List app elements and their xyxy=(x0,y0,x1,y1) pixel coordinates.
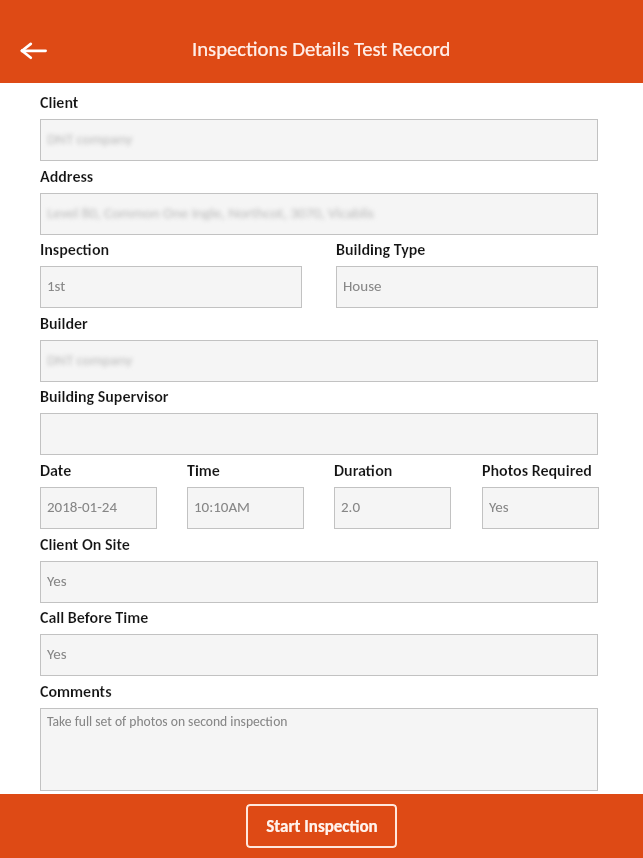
staticText: Inspections Details Test Record xyxy=(192,36,451,61)
staticText: Client On Site xyxy=(40,535,130,555)
staticText: Date xyxy=(40,461,72,481)
button[interactable]: 10:10AM xyxy=(187,487,304,529)
staticText: DNT company xyxy=(47,351,133,369)
staticText: Building Type xyxy=(336,240,426,260)
staticText: Builder xyxy=(40,314,88,334)
button[interactable]: Yes xyxy=(40,561,598,603)
staticText: Building Supervisor xyxy=(40,387,169,407)
staticText: Inspection xyxy=(40,240,110,260)
staticText: Yes xyxy=(47,572,67,590)
button[interactable]: 2.0 xyxy=(334,487,451,529)
button[interactable] xyxy=(40,413,598,455)
staticText: House xyxy=(343,277,382,295)
button[interactable]: Level 80, Common One Ingle, Northcot, 30… xyxy=(40,193,598,235)
staticText: Yes xyxy=(489,498,509,516)
staticText: Level 80, Common One Ingle, Northcot, 30… xyxy=(47,204,374,222)
staticText: Photos Required xyxy=(482,461,592,481)
staticText: Time xyxy=(187,461,220,481)
button[interactable]: 1st xyxy=(40,266,302,308)
staticText: DNT company xyxy=(47,130,133,148)
button[interactable]: Back xyxy=(4,28,48,72)
button[interactable]: DNT company xyxy=(40,119,598,161)
button[interactable]: Yes xyxy=(40,634,598,676)
button[interactable]: Yes xyxy=(482,487,599,529)
button[interactable]: 2018-01-24 xyxy=(40,487,157,529)
staticText: 2.0 xyxy=(341,498,360,516)
button[interactable]: Start Inspection xyxy=(246,804,397,848)
staticText: Start Inspection xyxy=(266,816,378,837)
staticText: Yes xyxy=(47,645,67,663)
staticText: 2018-01-24 xyxy=(47,498,118,516)
staticText: Address xyxy=(40,167,94,187)
staticText: 10:10AM xyxy=(194,498,250,516)
staticText: Comments xyxy=(40,682,112,702)
button[interactable]: DNT company xyxy=(40,340,598,382)
staticText: 1st xyxy=(47,277,66,295)
staticText: Call Before Time xyxy=(40,608,149,628)
button[interactable]: House xyxy=(336,266,598,308)
staticText: Client xyxy=(40,93,79,113)
staticText: Duration xyxy=(334,461,393,481)
staticText: Take full set of photos on second inspec… xyxy=(47,713,288,730)
button[interactable]: Take full set of photos on second inspec… xyxy=(40,708,598,791)
